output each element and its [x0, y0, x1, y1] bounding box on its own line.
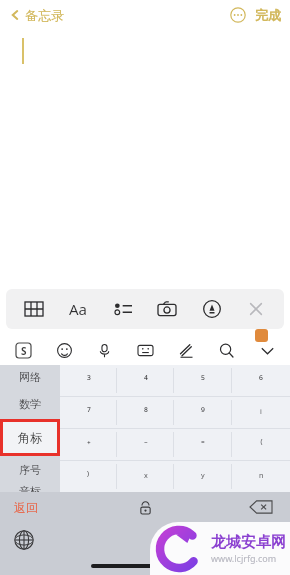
staticText: 角标	[18, 430, 42, 445]
button[interactable]: Keyboard settings	[132, 337, 158, 363]
button[interactable]: Table	[20, 295, 48, 323]
staticText: 龙城安卓网	[211, 533, 286, 552]
button[interactable]: ⁻	[117, 429, 174, 460]
staticText: ⁹	[201, 405, 205, 420]
button[interactable]: ⁾	[60, 461, 117, 492]
button[interactable]: Emoji	[51, 337, 77, 363]
staticText: 完成	[255, 7, 281, 23]
button[interactable]: 角标	[0, 419, 60, 456]
staticText: ⁱ	[260, 405, 262, 420]
staticText: ⁻	[144, 437, 148, 452]
staticText: ⁶	[259, 373, 263, 388]
staticText: ˣ	[144, 469, 148, 484]
button[interactable]: Delete	[248, 494, 274, 520]
button[interactable]: Voice input	[91, 337, 117, 363]
button[interactable]: Markup	[198, 295, 226, 323]
button[interactable]: 数学	[0, 389, 60, 419]
staticText: 返回	[14, 500, 38, 515]
button[interactable]: 返回	[14, 500, 38, 515]
button[interactable]: 备忘录	[8, 7, 64, 23]
button[interactable]: Checklist	[109, 295, 137, 323]
button[interactable]: Handwriting	[173, 337, 199, 363]
button[interactable]: More options	[230, 7, 246, 23]
button[interactable]: ⁱ	[232, 397, 290, 428]
staticText: ⁺	[87, 437, 91, 452]
staticText: S	[21, 344, 27, 358]
button[interactable]: Close keyboard	[242, 295, 270, 323]
button[interactable]: Text format	[64, 295, 92, 323]
button[interactable]: ⁺	[60, 429, 117, 460]
button[interactable]: Camera	[153, 295, 181, 323]
button[interactable]: ³	[60, 365, 117, 396]
button[interactable]: ʸ	[174, 461, 232, 492]
staticText: ⁽	[260, 437, 263, 452]
staticText: ³	[87, 373, 91, 388]
staticText: 音标	[19, 484, 41, 492]
staticText: 序号	[19, 463, 41, 477]
staticText: www.lcjrfg.com	[211, 552, 277, 564]
button[interactable]: Switch language	[14, 530, 34, 550]
button[interactable]: ⁸	[117, 397, 174, 428]
button[interactable]: Collapse	[254, 337, 280, 363]
button[interactable]: ⁵	[174, 365, 232, 396]
staticText: ⁵	[201, 373, 205, 388]
staticText: 备忘录	[25, 7, 64, 23]
button[interactable]: 完成	[255, 7, 281, 23]
button[interactable]: 网络	[0, 365, 60, 389]
button[interactable]: ⁶	[232, 365, 290, 396]
button[interactable]: ˣ	[117, 461, 174, 492]
staticText: 网络	[19, 370, 41, 384]
staticText: ⁼	[201, 437, 205, 452]
button[interactable]: ⁷	[60, 397, 117, 428]
staticText: Aa	[69, 299, 88, 319]
staticText: ⁷	[87, 405, 91, 420]
button[interactable]: 音标	[0, 484, 60, 492]
staticText: ⁴	[144, 373, 148, 388]
button[interactable]: Sogou input	[10, 337, 36, 363]
button[interactable]: ⁼	[174, 429, 232, 460]
button[interactable]: 序号	[0, 456, 60, 484]
button[interactable]: ⁴	[117, 365, 174, 396]
button[interactable]: Search	[213, 337, 239, 363]
staticText: ⁿ	[259, 469, 264, 484]
button[interactable]: Lock	[135, 497, 155, 517]
button[interactable]: ⁿ	[232, 461, 290, 492]
staticText: ʸ	[201, 469, 205, 484]
button[interactable]: ⁽	[232, 429, 290, 460]
staticText: ⁸	[144, 405, 148, 420]
staticText: ⁾	[87, 469, 90, 484]
staticText: 数学	[19, 397, 41, 411]
button[interactable]: ⁹	[174, 397, 232, 428]
